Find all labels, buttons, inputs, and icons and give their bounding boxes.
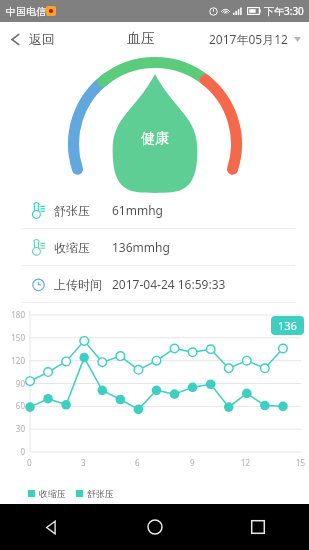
staticText: 血压	[127, 30, 155, 48]
staticText: 90	[15, 378, 25, 389]
button[interactable]: 返回	[0, 25, 65, 53]
button[interactable]: 2017年05月12	[201, 25, 309, 53]
staticText: 150	[11, 332, 25, 343]
staticText: 0	[20, 446, 25, 457]
button[interactable]: 舒张压	[0, 192, 309, 228]
staticText: 30	[15, 423, 25, 434]
staticText: 返回	[29, 31, 55, 47]
staticText: 15	[296, 457, 306, 468]
staticText: 下午3:30	[264, 4, 304, 18]
staticText: 上传时间	[54, 277, 102, 292]
button[interactable]: Recents	[206, 504, 309, 550]
button[interactable]: 上传时间	[0, 266, 309, 302]
staticText: 61mmhg	[112, 202, 163, 218]
button[interactable]: Home	[103, 504, 206, 550]
staticText: 2017-04-24 16:59:33	[112, 276, 226, 292]
staticText: 舒张压	[54, 203, 90, 218]
staticText: 中国电信	[6, 5, 46, 18]
staticText: 12	[241, 457, 251, 468]
staticText: 60	[15, 400, 25, 411]
staticText: 9	[190, 457, 195, 468]
button[interactable]: 收缩压	[0, 229, 309, 265]
staticText: 136mmhg	[112, 239, 170, 255]
staticText: 180	[11, 309, 25, 320]
button[interactable]: Back	[0, 504, 103, 550]
staticText: 3	[81, 457, 86, 468]
staticText: 收缩压	[39, 488, 66, 499]
staticText: 120	[11, 355, 25, 366]
staticText: 0	[27, 457, 32, 468]
staticText: 舒张压	[87, 488, 114, 499]
staticText: 2017年05月12	[209, 31, 288, 47]
staticText: 健康	[141, 130, 169, 148]
staticText: 6	[135, 457, 140, 468]
staticText: 收缩压	[54, 240, 90, 255]
staticText: 136	[278, 318, 297, 333]
